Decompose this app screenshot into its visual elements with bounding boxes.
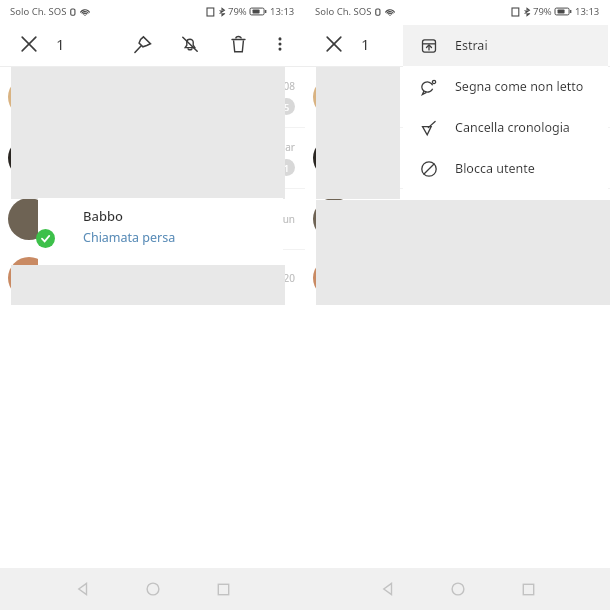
staticText: 1 xyxy=(284,162,290,174)
button[interactable]: 20 xyxy=(0,250,305,305)
staticText: nar xyxy=(279,140,295,154)
button[interactable]: Recenti xyxy=(201,568,245,610)
button[interactable]: s xyxy=(305,67,610,127)
staticText: Babbo xyxy=(83,207,124,225)
button[interactable]: 08 xyxy=(0,67,305,127)
staticText: Solo Ch. SOS xyxy=(315,5,372,18)
button[interactable]: Altre opzioni xyxy=(265,29,295,59)
button[interactable]: Estrai xyxy=(403,25,608,66)
staticText: 1 xyxy=(56,34,65,54)
button[interactable]: Babbo xyxy=(38,198,283,266)
staticText: Segna come non letto xyxy=(455,78,584,95)
staticText: 79% xyxy=(228,5,247,18)
button[interactable]: lun xyxy=(0,189,305,249)
button[interactable]: Recenti xyxy=(506,568,550,610)
staticText: 79% xyxy=(533,5,552,18)
staticText: Blocca utente xyxy=(455,160,535,177)
staticText: 1 xyxy=(361,34,370,54)
button[interactable]: Indietro xyxy=(61,568,105,610)
staticText: 13:13 xyxy=(270,5,295,18)
staticText: Chiamata persa xyxy=(83,229,176,246)
button[interactable]: Indietro xyxy=(366,568,410,610)
staticText: Estrai xyxy=(455,37,488,54)
staticText: 20 xyxy=(283,271,295,285)
staticText: Solo Ch. SOS xyxy=(10,5,67,18)
button[interactable]: Home xyxy=(131,568,175,610)
staticText: 5 xyxy=(284,101,290,113)
button[interactable]: Blocca utente xyxy=(403,148,608,189)
button[interactable]: t xyxy=(305,250,610,305)
button[interactable]: Cancella cronologia xyxy=(403,107,608,148)
button[interactable]: Chiudi xyxy=(317,27,351,61)
button[interactable]: Home xyxy=(436,568,480,610)
button[interactable]: nar xyxy=(0,128,305,188)
button[interactable]: n xyxy=(305,128,610,188)
staticText: 13:13 xyxy=(575,5,600,18)
button[interactable]: F xyxy=(305,189,610,249)
button[interactable]: Silenzia xyxy=(173,27,207,61)
staticText: lun xyxy=(280,212,295,226)
staticText: Cancella cronologia xyxy=(455,119,570,136)
button[interactable]: Chiudi xyxy=(12,27,46,61)
button[interactable]: Elimina xyxy=(221,27,255,61)
button[interactable]: Fissa xyxy=(125,27,159,61)
button[interactable]: Segna come non letto xyxy=(403,66,608,107)
staticText: 08 xyxy=(283,79,295,93)
